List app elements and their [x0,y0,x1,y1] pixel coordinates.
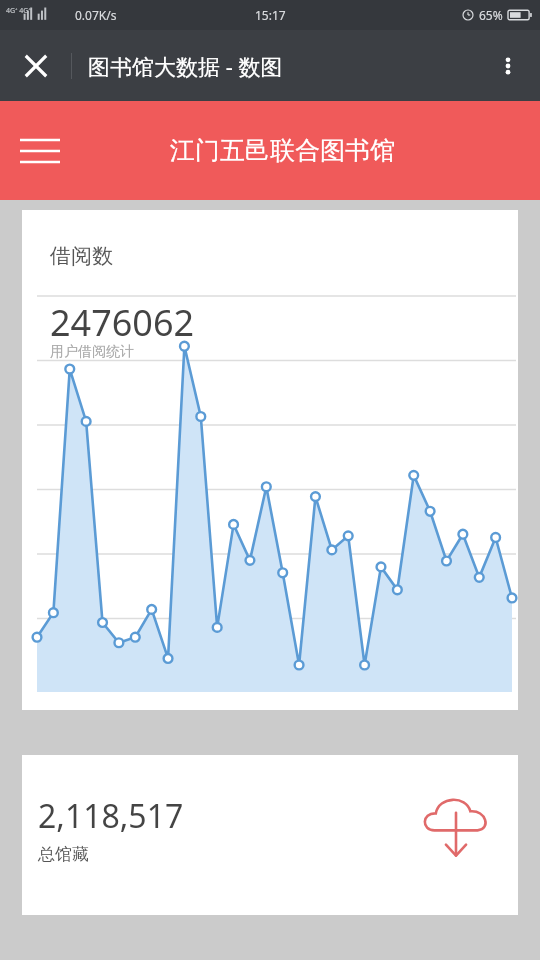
button[interactable]: Menu [14,125,66,177]
staticText: 0.07K/s [75,7,117,23]
staticText: 江门五邑联合图书馆 [170,135,395,166]
button[interactable]: Download [418,791,494,867]
button[interactable]: More options [484,42,532,90]
staticText: 用户借阅统计 [50,343,134,361]
button[interactable]: 借阅数 [22,210,518,710]
staticText: 总馆藏 [38,844,89,865]
staticText: 4G⁺ 4G⁺ [6,6,31,16]
staticText: 15:17 [255,7,286,23]
button[interactable]: 2,118,517 [22,755,518,915]
staticText: 2,118,517 [38,794,184,838]
button[interactable]: Close [12,42,60,90]
staticText: 2476062 [50,298,195,347]
staticText: 借阅数 [50,243,113,269]
staticText: 图书馆大数据 - 数图 [88,51,283,81]
staticText: 65% [479,7,503,23]
